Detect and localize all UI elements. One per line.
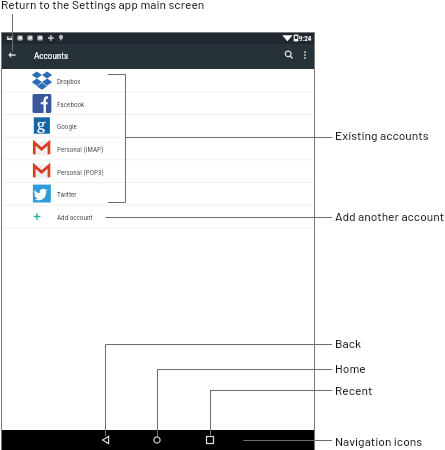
staticText: Return to the Settings app main screen [1, 0, 205, 11]
button[interactable]: Personal (POP3) [1, 160, 314, 183]
staticText: Existing accounts [335, 128, 429, 142]
staticText: Add another account [335, 209, 445, 223]
button[interactable]: Home [149, 432, 165, 448]
staticText: Add account [57, 213, 93, 221]
button[interactable]: Twitter [1, 182, 314, 205]
staticText: Navigation icons [335, 434, 423, 448]
staticText: Accounts [34, 50, 69, 61]
staticText: Facebook [57, 100, 85, 108]
staticText: Back [335, 336, 362, 350]
button[interactable]: Dropbox [1, 69, 314, 92]
staticText: Recent [335, 383, 373, 397]
button[interactable]: Search [280, 46, 298, 64]
staticText: 9:24 [299, 34, 312, 42]
button[interactable]: Back [98, 432, 114, 448]
button[interactable]: Facebook [1, 92, 314, 115]
staticText: Twitter [57, 190, 77, 198]
button[interactable]: Recent apps [202, 432, 218, 448]
staticText: Home [335, 361, 366, 375]
staticText: Dropbox [57, 77, 81, 85]
button[interactable]: Navigate up [3, 46, 21, 64]
staticText: g [37, 114, 46, 135]
staticText: Google [57, 122, 77, 130]
button[interactable]: More options [296, 46, 314, 64]
button[interactable]: Personal (IMAP) [1, 137, 314, 160]
button[interactable]: g [1, 114, 314, 137]
button[interactable]: Add account [1, 205, 314, 228]
staticText: Personal (IMAP) [57, 145, 104, 153]
staticText: Personal (POP3) [57, 168, 104, 176]
